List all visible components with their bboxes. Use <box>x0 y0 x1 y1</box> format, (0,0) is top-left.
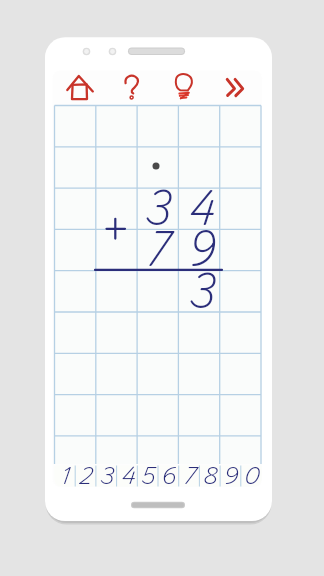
button[interactable]: 1 <box>55 466 76 487</box>
button[interactable]: Next <box>209 64 261 105</box>
staticText: 7 <box>184 459 195 495</box>
button[interactable]: Hint <box>157 64 209 105</box>
button[interactable]: 0 <box>241 466 262 487</box>
staticText: 2 <box>79 459 92 495</box>
staticText: 1 <box>61 459 70 495</box>
staticText: 0 <box>244 459 259 495</box>
button[interactable]: 6 <box>158 466 179 487</box>
staticText: 9 <box>223 459 238 495</box>
button[interactable]: 9 <box>220 466 241 487</box>
staticText: 3 <box>145 178 170 244</box>
staticText: 8 <box>203 459 217 495</box>
button[interactable]: 8 <box>199 466 220 487</box>
staticText: 6 <box>161 459 176 495</box>
button[interactable]: 4 <box>117 466 138 487</box>
button[interactable]: 2 <box>75 466 96 487</box>
staticText: 3 <box>189 261 214 327</box>
button[interactable]: 7 <box>179 466 200 487</box>
staticText: 9 <box>187 219 214 285</box>
staticText: 7 <box>147 219 168 285</box>
button[interactable]: Help <box>107 64 157 105</box>
staticText: 4 <box>121 459 135 495</box>
staticText: 4 <box>188 178 214 244</box>
button[interactable]: Home <box>55 64 107 105</box>
staticText: 3 <box>100 459 114 495</box>
staticText: 5 <box>141 459 155 495</box>
button[interactable]: 5 <box>137 466 158 487</box>
button[interactable]: 3 <box>96 466 117 487</box>
